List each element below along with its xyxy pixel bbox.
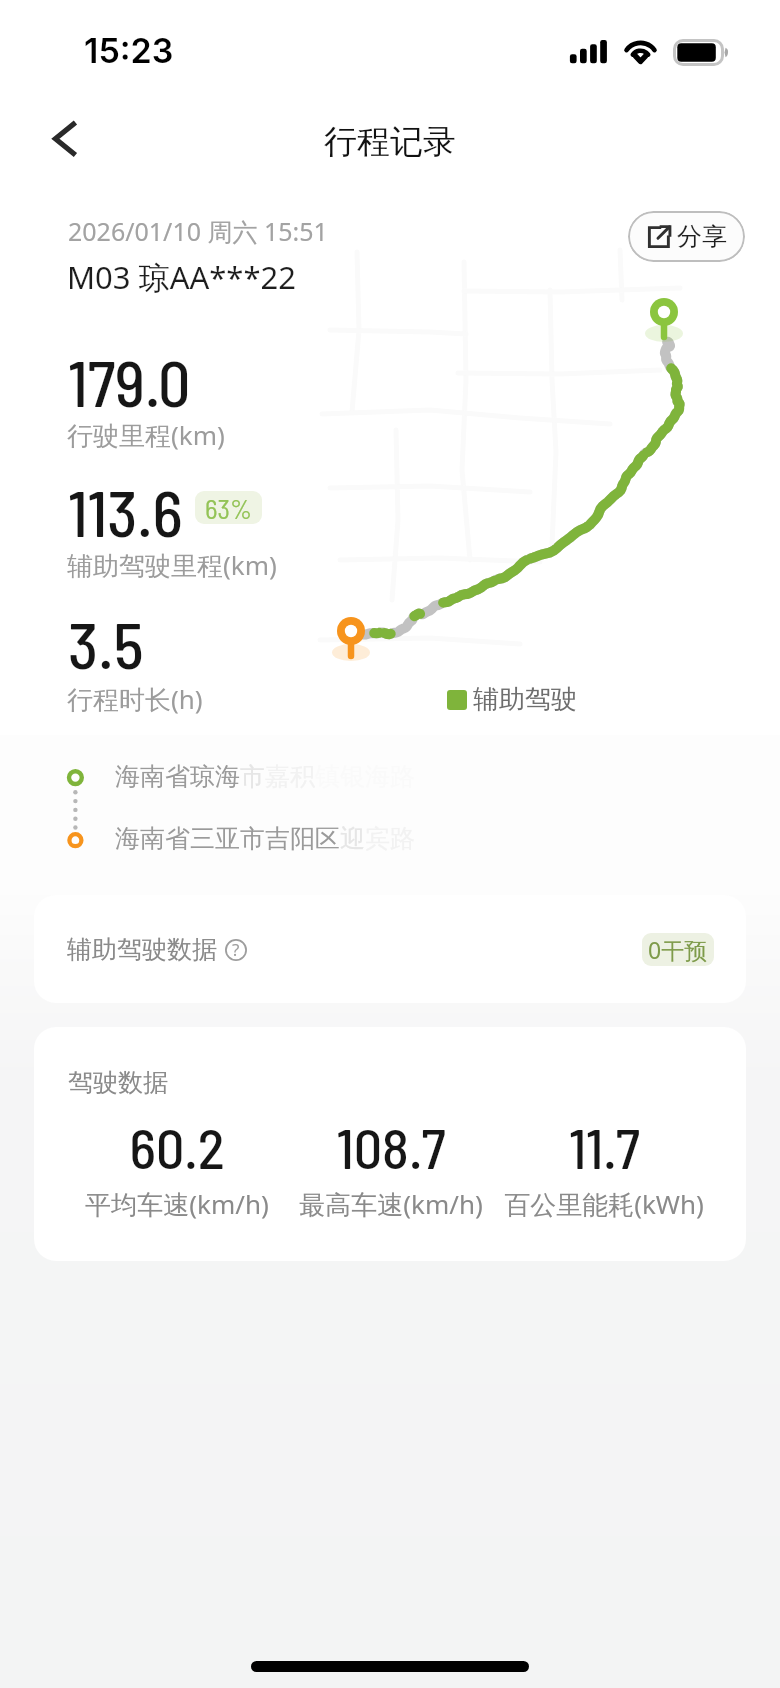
staticText: 行程记录 (324, 121, 456, 163)
staticText: 15:23 (84, 30, 174, 71)
staticText: 最高车速(km/h) (299, 1186, 483, 1222)
staticText: 百公里能耗(kWh) (504, 1186, 704, 1222)
staticText: 行驶里程(km) (67, 417, 225, 453)
staticText: 海南省琼海 (115, 761, 240, 792)
staticText: 海南省三亚市吉阳区 (115, 823, 340, 854)
staticText: ? (232, 938, 240, 960)
button[interactable]: 辅助驾驶数据 (34, 895, 746, 1003)
staticText: 市 (240, 761, 265, 792)
staticText: 113.6 (68, 473, 183, 550)
staticText: 辅助驾驶数据 (67, 934, 217, 965)
staticText: 分享 (677, 221, 727, 252)
staticText: 宾路 (365, 823, 415, 854)
staticText: 0干预 (648, 934, 708, 965)
staticText: 辅助驾驶里程(km) (67, 547, 277, 583)
staticText: 驾驶数据 (68, 1067, 168, 1098)
staticText: 平均车速(km/h) (85, 1186, 269, 1222)
button[interactable]: Back (32, 106, 94, 168)
staticText: 179.0 (68, 343, 191, 420)
staticText: 行程时长(h) (67, 681, 203, 717)
staticText: 3.5 (68, 605, 144, 682)
staticText: M03 琼AA***22 (67, 256, 296, 298)
staticText: 辅助驾驶 (473, 683, 577, 716)
staticText: 嘉积 (265, 761, 315, 792)
staticText: 108.7 (336, 1113, 446, 1180)
button[interactable]: 分享 (628, 211, 745, 262)
staticText: 63% (205, 492, 252, 524)
staticText: 60.2 (129, 1113, 225, 1180)
staticText: 迎 (340, 823, 365, 854)
staticText: 11.7 (569, 1113, 640, 1180)
staticText: 2026/01/10 周六 15:51 (68, 214, 328, 248)
